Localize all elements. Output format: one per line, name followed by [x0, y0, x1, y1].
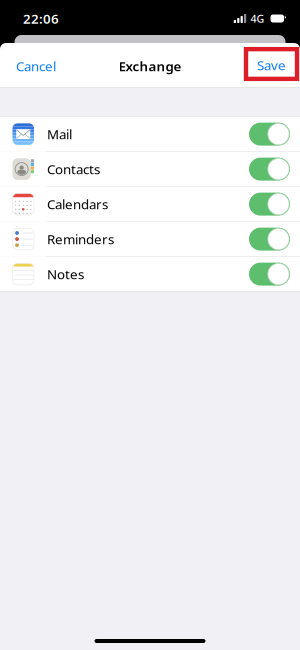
button[interactable]: Calendars: [0, 187, 300, 222]
staticText: Notes: [47, 265, 84, 283]
button[interactable]: Reminders: [0, 222, 300, 257]
staticText: 4G: [250, 11, 264, 26]
staticText: Mail: [47, 125, 72, 143]
staticText: Cancel: [16, 57, 56, 75]
button[interactable]: Save: [246, 49, 300, 83]
button[interactable]: Contacts: [0, 152, 300, 187]
button[interactable]: Notes: [0, 257, 300, 292]
staticText: Calendars: [47, 195, 108, 213]
staticText: Reminders: [47, 230, 114, 248]
button[interactable]: Cancel: [0, 50, 68, 82]
staticText: 22:06: [23, 10, 59, 27]
staticText: Contacts: [47, 160, 100, 178]
button[interactable]: Mail: [0, 117, 300, 152]
staticText: Save: [257, 56, 286, 74]
staticText: Exchange: [118, 57, 181, 75]
